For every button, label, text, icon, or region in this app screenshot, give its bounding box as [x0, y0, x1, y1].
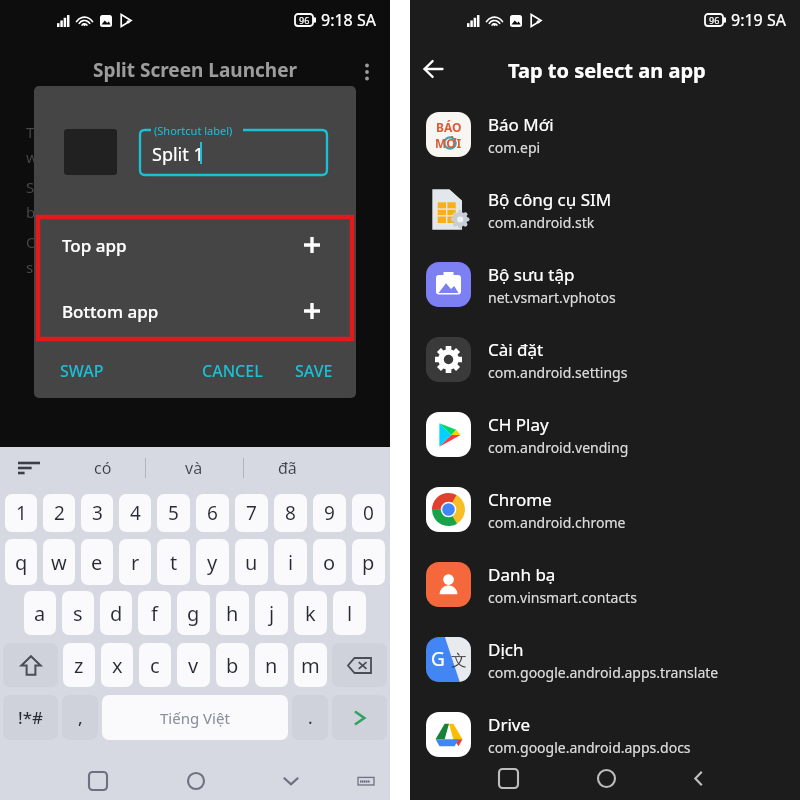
button[interactable]: Top app — [34, 212, 356, 278]
button[interactable]: z — [63, 643, 95, 687]
button[interactable]: . — [292, 695, 328, 740]
button[interactable]: 4 — [119, 494, 151, 532]
staticText: com.android.chrome — [488, 513, 626, 532]
button[interactable]: q — [5, 539, 37, 585]
staticText: Set up a pair below: pick a top app and … — [26, 177, 364, 222]
button[interactable]: f — [138, 591, 171, 635]
staticText: SAVE — [295, 360, 333, 382]
button[interactable]: m — [294, 643, 327, 687]
button[interactable]: !*# — [3, 695, 58, 740]
button[interactable]: Cài đặt — [410, 322, 800, 397]
button[interactable]: Back — [416, 52, 450, 86]
button[interactable]: Bộ sưu tập — [410, 247, 800, 322]
staticText: . — [308, 706, 313, 729]
button[interactable]: n — [255, 643, 288, 687]
button[interactable]: k — [294, 591, 327, 635]
staticText: Bộ sưu tập — [488, 263, 575, 286]
button[interactable]: và — [159, 447, 229, 489]
button[interactable]: 2 — [43, 494, 75, 532]
staticText: và — [185, 457, 203, 479]
button[interactable]: 3 — [81, 494, 113, 532]
staticText: Bottom app — [62, 300, 159, 323]
button[interactable]: Chrome — [410, 472, 800, 547]
button[interactable]: i — [274, 539, 307, 585]
button[interactable]: Backspace — [332, 643, 387, 687]
button[interactable]: Bottom app — [34, 278, 356, 344]
staticText: com.google.android.apps.docs — [488, 738, 691, 757]
staticText: , — [78, 706, 83, 729]
button[interactable]: Recents — [486, 756, 530, 800]
button[interactable]: BÁO — [410, 97, 800, 172]
button[interactable]: CH Play — [410, 397, 800, 472]
button[interactable]: a — [24, 591, 56, 635]
button[interactable]: 6 — [196, 494, 229, 532]
button[interactable]: Drive — [410, 697, 800, 772]
staticText: r — [131, 549, 140, 576]
button[interactable]: Home — [584, 756, 628, 800]
button[interactable]: j — [255, 591, 288, 635]
staticText: 96 — [299, 14, 310, 26]
staticText: BÁO — [436, 119, 462, 135]
staticText: c — [150, 652, 160, 679]
button[interactable]: p — [352, 539, 385, 585]
button[interactable]: Back — [677, 756, 721, 800]
button[interactable]: 5 — [157, 494, 190, 532]
button[interactable]: đã — [252, 447, 322, 489]
button[interactable]: Home — [174, 759, 218, 800]
button[interactable]: y — [196, 539, 229, 585]
staticText: Open the shortcut any time to relaunch t… — [26, 232, 364, 277]
staticText: q — [15, 549, 28, 576]
button[interactable]: b — [216, 643, 249, 687]
button[interactable]: Bộ công cụ SIM — [410, 172, 800, 247]
button[interactable]: Enter — [332, 695, 387, 740]
staticText: đã — [278, 457, 297, 479]
staticText: 文 — [451, 651, 467, 671]
staticText: Báo Mới — [488, 113, 554, 136]
button[interactable]: h — [216, 591, 249, 635]
button[interactable]: 9 — [313, 494, 346, 532]
button[interactable]: 1 — [5, 494, 37, 532]
button[interactable]: e — [81, 539, 113, 585]
button[interactable]: 8 — [274, 494, 307, 532]
button[interactable]: r — [119, 539, 151, 585]
staticText: i — [288, 549, 294, 576]
button[interactable]: Tiếng Việt — [102, 695, 288, 740]
button[interactable]: g — [177, 591, 210, 635]
button[interactable]: d — [100, 591, 132, 635]
staticText: Split 1 — [152, 142, 204, 167]
staticText: Chrome — [488, 488, 552, 511]
staticText: This app lets you launch two apps side b… — [26, 122, 364, 167]
staticText: CH Play — [488, 413, 549, 436]
button[interactable]: có — [68, 447, 138, 489]
button[interactable]: Recents — [76, 759, 120, 800]
button[interactable]: More options — [352, 57, 382, 87]
button[interactable]: Danh bạ — [410, 547, 800, 622]
button[interactable]: s — [62, 591, 94, 635]
button[interactable]: v — [177, 643, 210, 687]
button[interactable]: Shift — [3, 643, 58, 687]
button[interactable]: G — [410, 622, 800, 697]
staticText: 1 — [16, 500, 27, 526]
button[interactable]: o — [313, 539, 346, 585]
button[interactable]: , — [62, 695, 98, 740]
button[interactable]: x — [101, 643, 133, 687]
staticText: l — [347, 600, 353, 627]
staticText: 0 — [363, 500, 374, 526]
button[interactable]: w — [43, 539, 75, 585]
button[interactable]: Switch keyboard — [344, 759, 388, 800]
button[interactable]: 0 — [352, 494, 385, 532]
button[interactable]: CANCEL — [198, 352, 267, 390]
button[interactable]: c — [139, 643, 171, 687]
button[interactable]: SWAP — [56, 352, 108, 390]
button[interactable]: SAVE — [291, 352, 337, 390]
button[interactable]: t — [157, 539, 190, 585]
button[interactable]: u — [235, 539, 268, 585]
button[interactable]: Hide keyboard — [269, 759, 313, 800]
button[interactable]: 7 — [235, 494, 268, 532]
button[interactable]: Keyboard settings — [6, 447, 52, 489]
staticText: d — [110, 600, 123, 627]
staticText: h — [226, 600, 239, 627]
button[interactable]: l — [333, 591, 366, 635]
staticText: x — [112, 652, 123, 679]
